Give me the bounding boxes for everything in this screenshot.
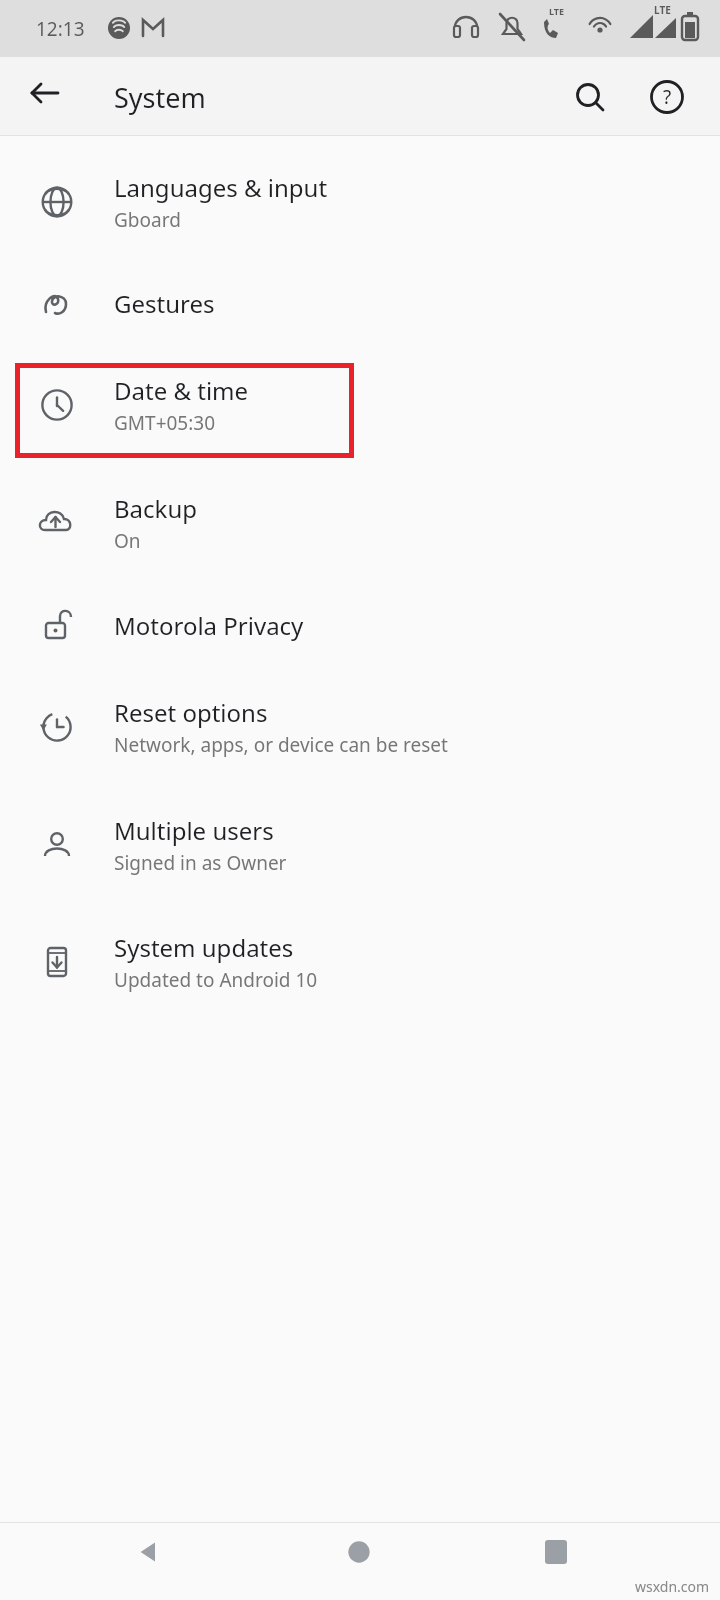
staticText: Updated to Android 10 (114, 967, 318, 993)
button[interactable]: Back (109, 1523, 189, 1581)
staticText: Network, apps, or device can be reset (114, 732, 448, 758)
staticText: GMT+05:30 (114, 410, 216, 436)
staticText: LTE (654, 3, 671, 17)
button[interactable]: Multiple users (0, 796, 720, 894)
button[interactable]: Home (319, 1523, 399, 1581)
button[interactable]: Languages & input (0, 153, 720, 251)
button[interactable]: Recent apps (516, 1523, 596, 1581)
staticText: ? (663, 84, 672, 110)
button[interactable]: Date & time (0, 356, 720, 454)
staticText: On (114, 528, 141, 554)
button[interactable]: Reset options (0, 678, 720, 776)
staticText: LTE (549, 5, 565, 17)
button[interactable]: Search (554, 61, 626, 133)
button[interactable]: Gestures (0, 254, 720, 352)
staticText: Motorola Privacy (114, 609, 304, 642)
staticText: Languages & input (114, 171, 328, 204)
button[interactable]: Back (9, 57, 81, 129)
staticText: Gboard (114, 207, 181, 233)
staticText: 12:13 (36, 16, 85, 42)
staticText: Backup (114, 492, 197, 525)
staticText: System (114, 79, 206, 116)
button[interactable]: Help (631, 61, 703, 133)
staticText: System updates (114, 931, 294, 964)
staticText: Gestures (114, 287, 215, 320)
button[interactable]: Motorola Privacy (0, 576, 720, 674)
staticText: Reset options (114, 696, 268, 729)
staticText: Multiple users (114, 814, 274, 847)
button[interactable]: System updates (0, 913, 720, 1011)
staticText: Date & time (114, 374, 249, 407)
staticText: wsxdn.com (635, 1577, 710, 1596)
staticText: Signed in as Owner (114, 850, 287, 876)
button[interactable]: Backup (0, 474, 720, 572)
